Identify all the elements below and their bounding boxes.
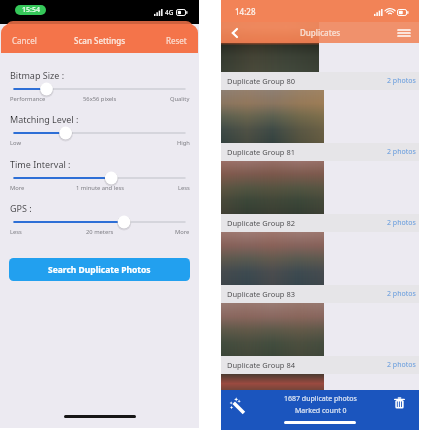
staticText: Less (178, 184, 190, 192)
staticText: Less (10, 228, 22, 236)
staticText: GPS : (10, 202, 32, 214)
staticText: Duplicates (300, 27, 341, 38)
staticText: 2 photos (387, 289, 416, 299)
button[interactable]: Duplicate Group 84 (221, 356, 419, 374)
staticText: 1 minute and less (76, 184, 124, 192)
button[interactable]: Duplicate Group 83 (221, 285, 419, 303)
staticText: 2 photos (387, 360, 416, 370)
staticText: Cancel (12, 35, 37, 46)
staticText: Performance (10, 95, 46, 103)
button[interactable]: Search Duplicate Photos (9, 258, 190, 281)
staticText: 2 photos (387, 218, 416, 228)
staticText: 56x56 pixels (83, 95, 117, 103)
staticText: Low (10, 139, 21, 147)
staticText: Matching Level : (10, 113, 79, 125)
staticText: 2 photos (387, 147, 416, 157)
button[interactable]: Reset (164, 33, 189, 48)
staticText: Duplicate Group 81 (227, 147, 296, 157)
button[interactable]: Duplicate Group 80 (221, 72, 419, 90)
staticText: More (10, 184, 25, 192)
button[interactable]: Duplicate Group 81 (221, 143, 419, 161)
staticText: 14:28 (235, 6, 256, 17)
button[interactable]: Duplicate Group 82 (221, 214, 419, 232)
staticText: More (175, 228, 190, 236)
staticText: Reset (166, 35, 187, 46)
staticText: Time Interval : (10, 158, 71, 170)
staticText: High (177, 139, 190, 147)
staticText: Search Duplicate Photos (48, 264, 151, 276)
button[interactable]: Back (225, 23, 245, 43)
staticText: Scan Settings (74, 35, 126, 46)
staticText: 20 meters (86, 228, 114, 236)
staticText: Bitmap Size : (10, 69, 65, 81)
staticText: 4G (165, 8, 174, 17)
button[interactable]: Auto select (225, 393, 251, 419)
staticText: Quality (170, 95, 190, 103)
staticText: Duplicate Group 83 (227, 289, 296, 299)
staticText: Duplicate Group 82 (227, 218, 296, 228)
staticText: Marked count 0 (295, 406, 347, 416)
button[interactable]: Delete (390, 394, 408, 412)
staticText: 2 photos (387, 76, 416, 86)
staticText: Duplicate Group 80 (227, 76, 296, 86)
button[interactable]: Cancel (10, 33, 39, 48)
staticText: Duplicate Group 84 (227, 360, 296, 370)
staticText: 1687 duplicate photos (284, 394, 357, 404)
button[interactable]: Menu (395, 24, 413, 42)
staticText: 15:54 (22, 5, 40, 15)
